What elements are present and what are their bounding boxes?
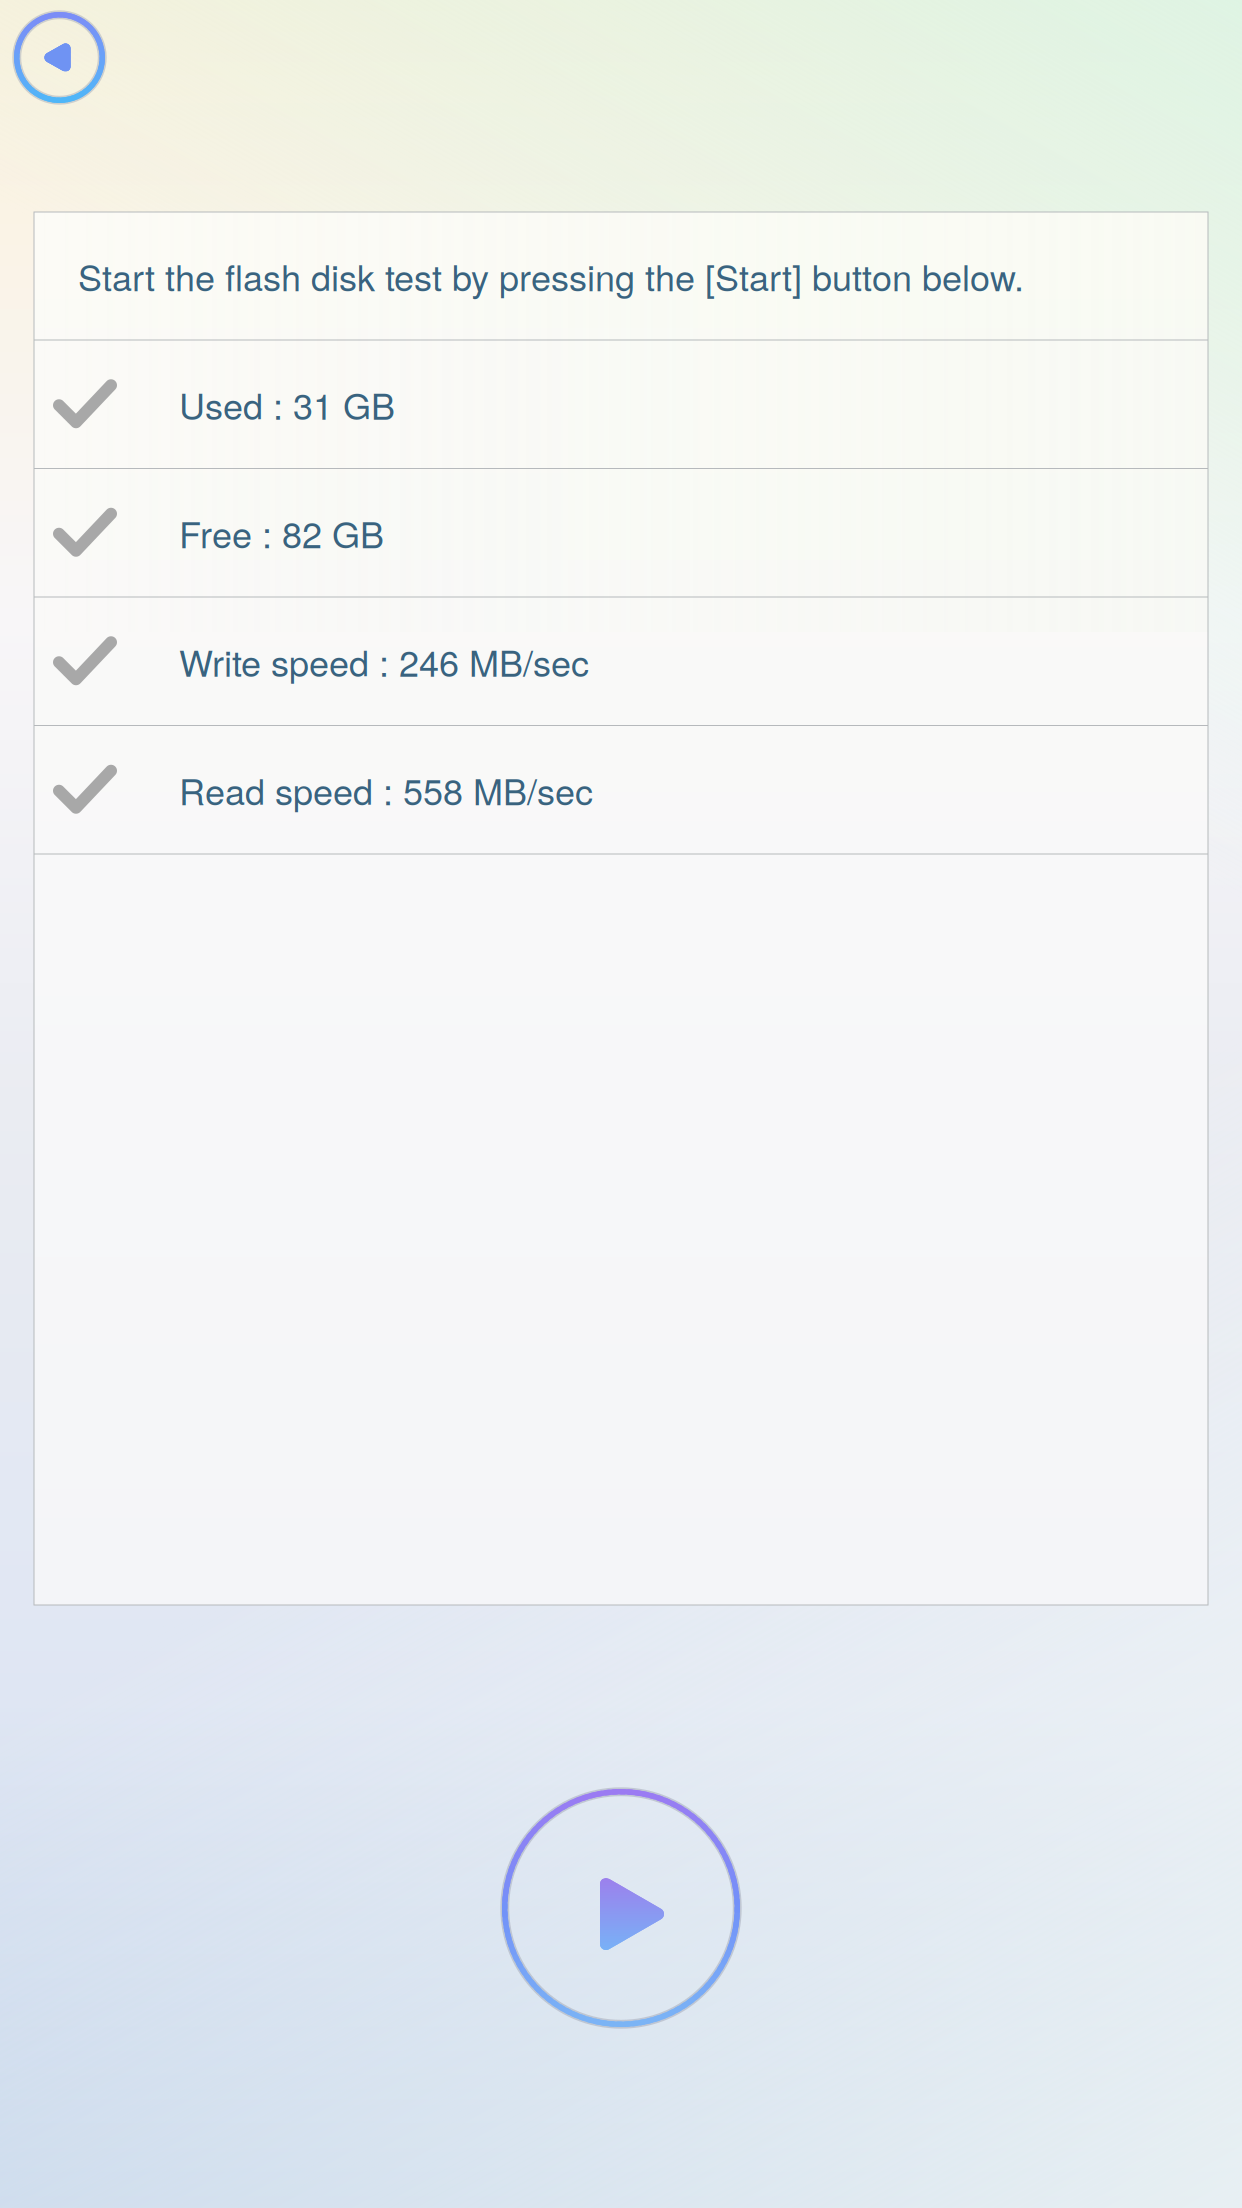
button[interactable]: Back [14, 12, 105, 103]
staticText: Start the flash disk test by pressing th… [78, 250, 1024, 302]
button[interactable]: Read speed : 558 MB/sec [34, 726, 1208, 853]
button[interactable]: Free : 82 GB [34, 469, 1208, 596]
button[interactable]: Start test [502, 1789, 740, 2027]
staticText: Used : 31 GB [179, 378, 395, 430]
staticText: Read speed : 558 MB/sec [179, 764, 593, 816]
staticText: Free : 82 GB [179, 507, 384, 559]
staticText: Write speed : 246 MB/sec [179, 635, 589, 687]
button[interactable]: Used : 31 GB [34, 340, 1208, 468]
button[interactable]: Write speed : 246 MB/sec [34, 597, 1208, 725]
